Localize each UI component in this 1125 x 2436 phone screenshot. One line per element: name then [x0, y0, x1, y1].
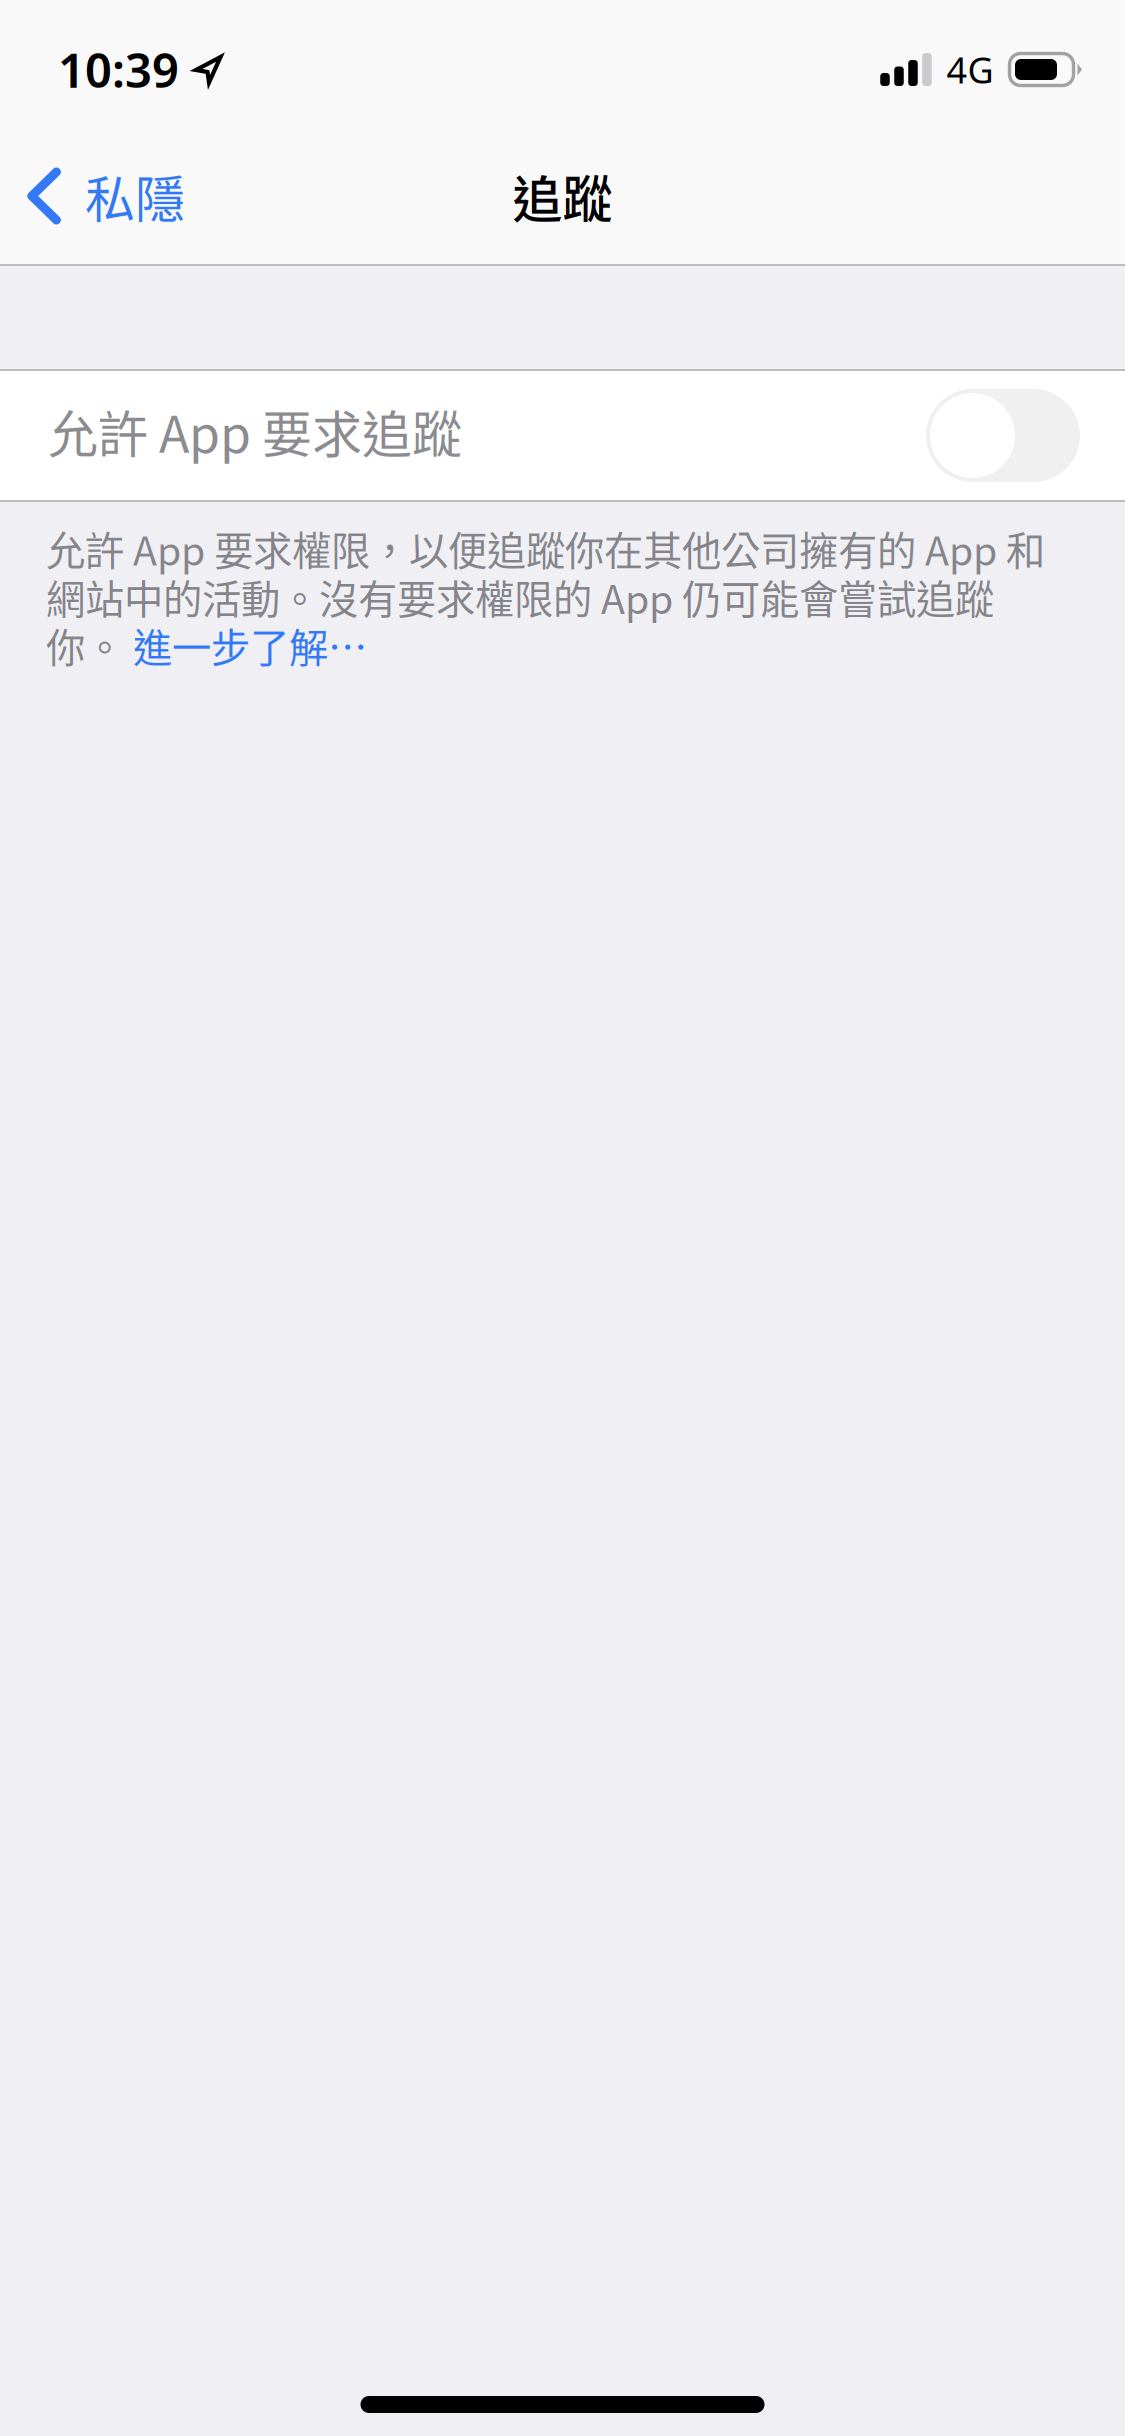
staticText: 允許 App 要求權限，以便追蹤你在其他公司擁有的 App 和 [46, 520, 1045, 577]
staticText: 10:39 [58, 37, 179, 101]
staticText: 4G [946, 45, 993, 94]
staticText: 私隱 [85, 160, 185, 232]
button[interactable]: 私隱 [0, 132, 209, 260]
staticText: 你。 [46, 617, 133, 674]
staticText: 允許 App 要求追蹤 [48, 395, 462, 467]
staticText: 進一步了解⋯ [133, 617, 367, 674]
button[interactable]: 進一步了解⋯ [133, 617, 367, 674]
button[interactable]: 允許 App 要求追蹤 [0, 371, 1125, 500]
staticText: 網站中的活動。沒有要求權限的 App 仍可能會嘗試追蹤 [46, 568, 994, 625]
staticText: 追蹤 [512, 160, 612, 232]
